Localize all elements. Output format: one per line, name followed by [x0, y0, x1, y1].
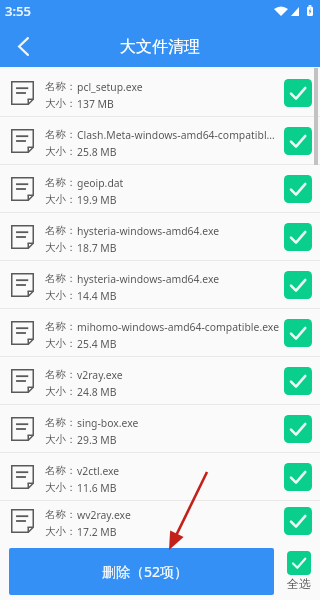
staticText: 14.4 MB	[77, 289, 117, 303]
button[interactable]: Selected	[284, 319, 312, 347]
staticText: 大小：	[45, 97, 77, 110]
button[interactable]: Selected	[286, 551, 311, 591]
staticText: 大小：	[45, 241, 77, 254]
staticText: 名称：	[45, 224, 77, 237]
button[interactable]: Selected	[284, 271, 312, 299]
staticText: 名称：	[45, 416, 77, 429]
staticText: 3:55	[5, 2, 31, 20]
staticText: 大小：	[45, 481, 77, 494]
button[interactable]: 名称：	[0, 501, 320, 538]
button[interactable]: Selected	[284, 223, 312, 251]
staticText: geoip.dat	[77, 176, 124, 190]
staticText: mihomo-windows-amd64-compatible.exe	[77, 320, 280, 334]
staticText: 名称：	[45, 320, 77, 333]
staticText: 名称：	[45, 464, 77, 477]
staticText: Clash.Meta-windows-amd64-compatible-v1.1…	[77, 128, 280, 142]
button[interactable]: Selected	[284, 79, 312, 107]
button[interactable]: 名称：	[0, 357, 320, 405]
staticText: v2ray.exe	[77, 368, 123, 382]
staticText: v2ctl.exe	[77, 464, 120, 478]
staticText: 大小：	[45, 385, 77, 398]
staticText: 全选	[287, 576, 311, 591]
staticText: 25.8 MB	[77, 145, 117, 159]
staticText: 大小：	[45, 145, 77, 158]
staticText: 名称：	[45, 176, 77, 189]
staticText: 名称：	[45, 368, 77, 381]
staticText: wv2ray.exe	[77, 508, 131, 522]
staticText: 11.6 MB	[77, 481, 117, 495]
button[interactable]: Selected	[287, 551, 311, 575]
staticText: 大小：	[45, 337, 77, 350]
button[interactable]: Selected	[284, 367, 312, 395]
staticText: 19.9 MB	[77, 193, 117, 207]
staticText: hysteria-windows-amd64.exe	[77, 272, 220, 286]
staticText: 29.3 MB	[77, 433, 117, 447]
button[interactable]: 名称：	[0, 261, 320, 309]
staticText: 名称：	[45, 272, 77, 285]
button[interactable]: Selected	[284, 175, 312, 203]
staticText: 删除（52项）	[102, 562, 189, 581]
button[interactable]: Selected	[284, 507, 312, 535]
staticText: 名称：	[45, 128, 77, 141]
staticText: 24.8 MB	[77, 385, 117, 399]
staticText: sing-box.exe	[77, 416, 139, 430]
staticText: 大小：	[45, 289, 77, 302]
staticText: 大文件清理	[120, 37, 200, 57]
button[interactable]: 名称：	[0, 213, 320, 261]
staticText: 18.7 MB	[77, 241, 117, 255]
staticText: 25.4 MB	[77, 337, 117, 351]
button[interactable]: 名称：	[0, 69, 320, 117]
staticText: 大小：	[45, 193, 77, 206]
button[interactable]: 名称：	[0, 165, 320, 213]
button[interactable]: Selected	[284, 127, 312, 155]
staticText: 大小：	[45, 525, 77, 538]
button[interactable]: Selected	[284, 415, 312, 443]
button[interactable]: Back	[0, 22, 46, 67]
button[interactable]: 名称：	[0, 309, 320, 357]
staticText: hysteria-windows-amd64.exe	[77, 224, 220, 238]
button[interactable]: 名称：	[0, 117, 320, 165]
staticText: 名称：	[45, 508, 77, 521]
button[interactable]: 名称：	[0, 453, 320, 501]
staticText: 17.2 MB	[77, 525, 117, 538]
staticText: 137 MB	[77, 97, 114, 111]
staticText: 名称：	[45, 80, 77, 93]
staticText: pcl_setup.exe	[77, 80, 143, 94]
button[interactable]: 名称：	[0, 405, 320, 453]
button[interactable]: Selected	[284, 463, 312, 491]
staticText: 大小：	[45, 433, 77, 446]
button[interactable]: 删除（52项）	[9, 548, 274, 595]
